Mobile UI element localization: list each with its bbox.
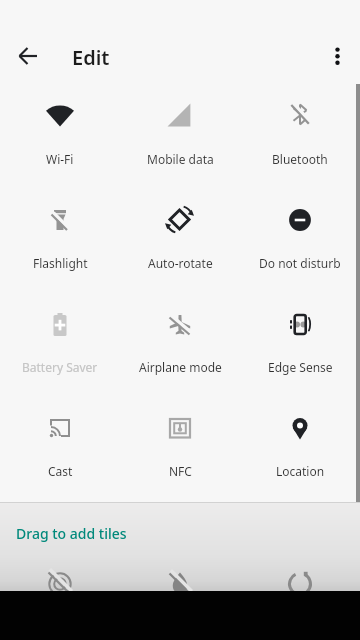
staticText: Mobile data <box>147 151 214 167</box>
staticText: Wi-Fi <box>46 151 74 167</box>
button[interactable]: Mobile data <box>120 84 240 176</box>
staticText: Airplane mode <box>139 359 222 375</box>
staticText: Battery Saver <box>22 359 98 375</box>
staticText: Location <box>276 463 325 479</box>
staticText: Bluetooth <box>272 151 328 167</box>
button[interactable] <box>36 560 84 608</box>
staticText: Edit <box>72 44 110 71</box>
button[interactable]: Airplane mode <box>120 292 240 384</box>
button[interactable]: Do not disturb <box>240 188 360 280</box>
staticText: Edge Sense <box>268 359 333 375</box>
staticText: Auto-rotate <box>148 255 213 271</box>
staticText: Drag to add tiles <box>16 524 127 543</box>
button[interactable]: Edge Sense <box>240 292 360 384</box>
button[interactable] <box>4 32 52 80</box>
button[interactable]: Auto-rotate <box>120 188 240 280</box>
button[interactable] <box>276 560 324 608</box>
button[interactable]: Flashlight <box>0 188 120 280</box>
button[interactable]: NFC <box>120 396 240 488</box>
button[interactable]: Wi-Fi <box>0 84 120 176</box>
staticText: Flashlight <box>33 255 88 271</box>
button[interactable] <box>313 32 360 80</box>
staticText: Cast <box>48 463 73 479</box>
staticText: NFC <box>169 463 192 479</box>
button[interactable]: Battery Saver <box>0 292 120 384</box>
staticText: Do not disturb <box>259 255 341 271</box>
button[interactable]: Bluetooth <box>240 84 360 176</box>
button[interactable]: Location <box>240 396 360 488</box>
button[interactable] <box>156 560 204 608</box>
button[interactable]: Cast <box>0 396 120 488</box>
